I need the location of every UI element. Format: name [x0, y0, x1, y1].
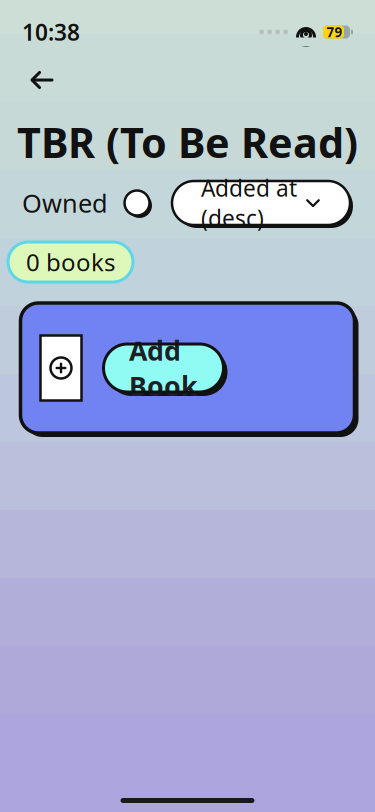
staticText: TBR (To Be Read)	[17, 115, 358, 169]
staticText: Added at (desc)	[201, 173, 297, 233]
staticText: 0 books	[26, 246, 115, 278]
button[interactable]: Back	[20, 62, 64, 98]
staticText: Owned	[22, 186, 108, 220]
staticText: 10:38	[22, 17, 80, 47]
button[interactable]: Add Book	[99, 340, 227, 396]
button[interactable]: Owned	[22, 186, 152, 220]
staticText: Add Book	[129, 333, 198, 403]
button[interactable]: Add book cover	[40, 335, 81, 400]
staticText: 79	[326, 23, 342, 41]
button[interactable]: Added at (desc)	[169, 178, 353, 228]
